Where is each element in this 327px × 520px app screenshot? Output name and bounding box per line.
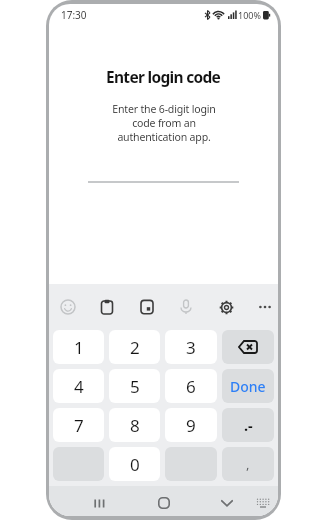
staticText: 8: [130, 414, 140, 437]
button[interactable]: [55, 294, 81, 320]
button[interactable]: [222, 330, 274, 364]
button[interactable]: [151, 490, 177, 516]
staticText: .-: [244, 415, 253, 435]
staticText: 5: [130, 375, 140, 398]
button[interactable]: 1: [53, 330, 104, 364]
staticText: 2: [130, 336, 140, 359]
button[interactable]: 8: [109, 408, 160, 442]
button[interactable]: 9: [165, 408, 217, 442]
staticText: 1: [74, 336, 84, 359]
button[interactable]: 3: [165, 330, 217, 364]
staticText: 17:30: [61, 8, 87, 22]
button[interactable]: 0: [109, 447, 160, 481]
button[interactable]: 6: [165, 369, 217, 403]
staticText: 6: [186, 375, 196, 398]
button[interactable]: [134, 294, 160, 320]
staticText: Done: [230, 377, 266, 396]
button[interactable]: ,: [222, 447, 274, 481]
button[interactable]: 2: [109, 330, 160, 364]
staticText: ,: [246, 455, 250, 473]
staticText: 4: [74, 375, 84, 398]
staticText: Enter the 6-digit login code from an aut…: [112, 102, 216, 144]
button[interactable]: [87, 490, 113, 516]
staticText: 0: [130, 453, 140, 476]
button[interactable]: .-: [222, 408, 274, 442]
button[interactable]: [173, 294, 199, 320]
button[interactable]: 7: [53, 408, 104, 442]
button[interactable]: 5: [109, 369, 160, 403]
staticText: 9: [186, 414, 196, 437]
button[interactable]: [214, 490, 240, 516]
button[interactable]: 4: [53, 369, 104, 403]
staticText: 3: [186, 336, 196, 359]
button[interactable]: Done: [222, 369, 274, 403]
button[interactable]: [252, 294, 278, 320]
staticText: 7: [74, 414, 84, 437]
staticText: 100%: [238, 9, 261, 21]
button[interactable]: [94, 294, 120, 320]
staticText: Enter login code: [106, 66, 221, 87]
button[interactable]: [213, 294, 239, 320]
button[interactable]: [250, 490, 276, 516]
